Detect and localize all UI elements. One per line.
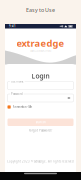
staticText: Easy to Use xyxy=(26,6,55,14)
staticText: SIGN IN xyxy=(35,120,45,124)
button[interactable]: Forgot Password? xyxy=(5,128,76,132)
button[interactable]: Username xyxy=(7,81,73,89)
staticText: 9:41 xyxy=(9,24,16,28)
button[interactable]: Password xyxy=(7,94,73,102)
staticText: Forgot Password? xyxy=(29,129,52,132)
staticText: A DIGITAL LEARNING PLATFORM xyxy=(30,50,51,52)
staticText: Remember Me xyxy=(12,105,32,109)
button[interactable]: SIGN IN xyxy=(7,118,73,126)
staticText: Copyright 2023 © ExtraEdge. All rights r… xyxy=(7,160,74,163)
staticText: Password xyxy=(11,92,23,96)
button[interactable]: Remember Me xyxy=(7,105,73,109)
staticText: extraedge xyxy=(16,37,64,49)
staticText: Login xyxy=(31,71,49,80)
staticText: Username xyxy=(11,80,24,83)
